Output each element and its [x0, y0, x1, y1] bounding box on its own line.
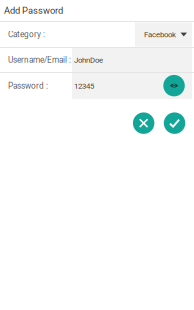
staticText: Category :: [8, 30, 45, 39]
button[interactable]: Facebook: [135, 22, 192, 46]
button[interactable]: Save: [164, 112, 185, 134]
staticText: 12345: [74, 81, 94, 91]
staticText: JohnDoe: [74, 55, 103, 65]
staticText: Add Password: [4, 5, 63, 16]
staticText: Password :: [8, 81, 48, 91]
staticText: Facebook: [144, 30, 176, 39]
staticText: Username/Email :: [8, 55, 71, 65]
button[interactable]: Cancel: [133, 112, 154, 134]
button[interactable]: Show password: [163, 75, 185, 96]
